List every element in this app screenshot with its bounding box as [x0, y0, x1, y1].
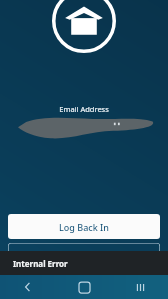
button[interactable]: Recent apps — [112, 275, 168, 299]
button[interactable]: Log Back In — [8, 214, 160, 239]
staticText: Internal Error — [13, 258, 68, 269]
button[interactable]: Home — [56, 275, 112, 299]
staticText: Email Address — [0, 104, 168, 114]
staticText: Log Back In — [59, 221, 109, 233]
button[interactable] — [8, 243, 160, 268]
button[interactable]: Back — [0, 275, 56, 299]
